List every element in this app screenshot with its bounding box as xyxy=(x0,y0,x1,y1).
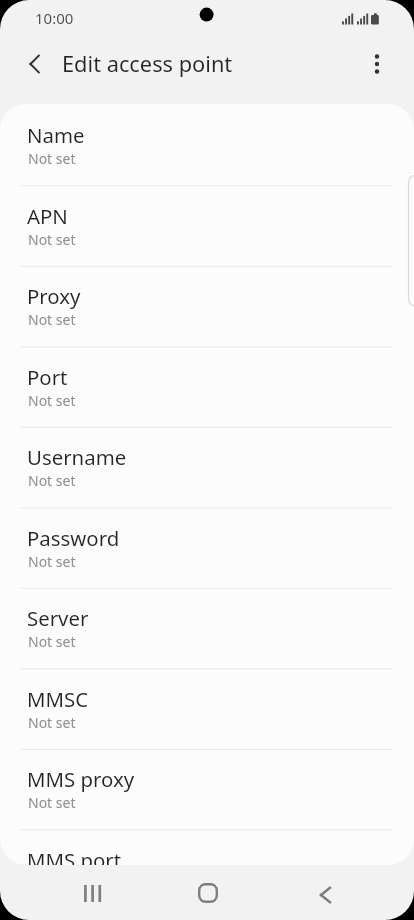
button[interactable]: APN xyxy=(0,185,414,265)
staticText: 10:00 xyxy=(35,8,74,28)
staticText: MMSC xyxy=(27,685,89,713)
staticText: Not set xyxy=(28,552,76,571)
staticText: Server xyxy=(27,604,89,632)
button[interactable]: Proxy xyxy=(0,265,414,345)
button[interactable]: Port xyxy=(0,346,414,426)
staticText: Not set xyxy=(28,713,76,732)
staticText: APN xyxy=(27,202,68,230)
button[interactable]: Home xyxy=(178,863,238,920)
button[interactable]: Navigate up xyxy=(14,43,56,85)
button[interactable]: Recent apps xyxy=(63,863,123,920)
staticText: Password xyxy=(27,524,120,552)
button[interactable]: Name xyxy=(0,104,414,184)
staticText: Username xyxy=(27,443,127,471)
staticText: Not set xyxy=(28,471,76,490)
button[interactable]: MMS port xyxy=(0,829,414,865)
staticText: Edit access point xyxy=(62,49,233,79)
staticText: Not set xyxy=(28,632,76,651)
button[interactable]: MMS proxy xyxy=(0,748,414,828)
staticText: Not set xyxy=(28,391,76,410)
staticText: MMS port xyxy=(27,846,122,865)
staticText: Not set xyxy=(28,310,76,329)
staticText: Name xyxy=(27,121,85,149)
button[interactable]: Server xyxy=(0,587,414,667)
staticText: Not set xyxy=(28,149,76,168)
staticText: MMS proxy xyxy=(27,765,135,793)
button[interactable]: Username xyxy=(0,426,414,506)
button[interactable]: Back xyxy=(297,865,357,920)
staticText: Port xyxy=(27,363,68,391)
staticText: Not set xyxy=(28,793,76,812)
staticText: Not set xyxy=(28,230,76,249)
staticText: Proxy xyxy=(27,282,81,310)
button[interactable]: Password xyxy=(0,507,414,587)
button[interactable]: MMSC xyxy=(0,668,414,748)
button[interactable]: More options xyxy=(356,43,398,85)
